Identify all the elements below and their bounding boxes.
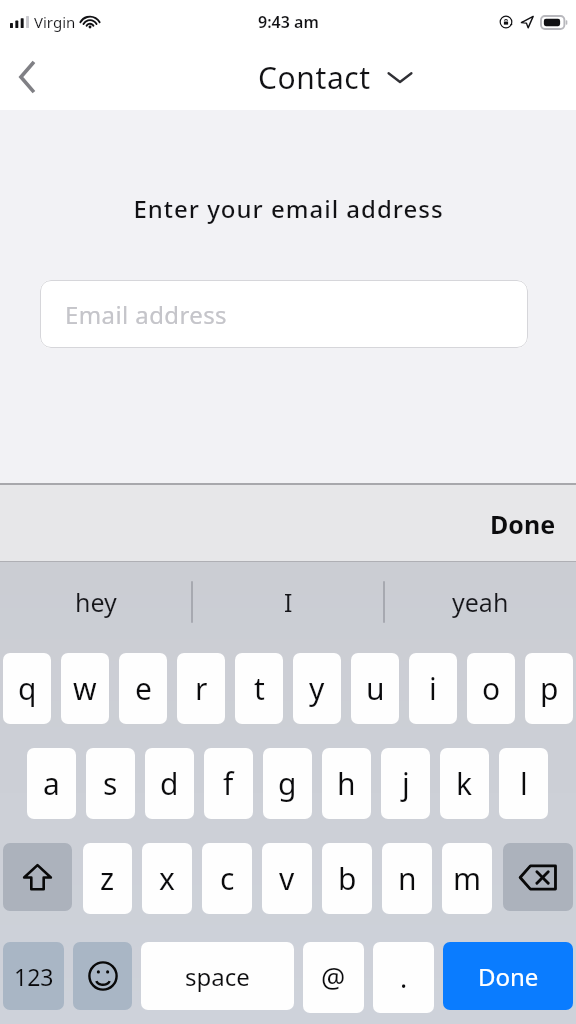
button[interactable]: d bbox=[145, 748, 194, 819]
button[interactable]: q bbox=[3, 653, 51, 724]
staticText: @ bbox=[321, 959, 346, 996]
button[interactable]: o bbox=[467, 653, 515, 724]
button[interactable]: n bbox=[382, 843, 432, 914]
button[interactable]: x bbox=[142, 843, 192, 914]
button[interactable]: a bbox=[27, 748, 76, 819]
button[interactable]: t bbox=[235, 653, 283, 724]
staticText: I bbox=[284, 585, 293, 619]
button[interactable]: Backspace bbox=[503, 843, 573, 911]
button[interactable]: m bbox=[442, 843, 492, 914]
staticText: h bbox=[337, 763, 356, 804]
button[interactable]: l bbox=[499, 748, 548, 819]
button[interactable]: i bbox=[409, 653, 457, 724]
staticText: 123 bbox=[14, 961, 54, 992]
staticText: q bbox=[18, 668, 37, 709]
staticText: x bbox=[159, 858, 175, 899]
staticText: v bbox=[279, 858, 295, 899]
button[interactable]: w bbox=[61, 653, 109, 724]
button[interactable]: I bbox=[192, 562, 384, 642]
button[interactable]: h bbox=[322, 748, 371, 819]
staticText: r bbox=[195, 668, 208, 709]
staticText: d bbox=[160, 763, 179, 804]
staticText: f bbox=[223, 763, 234, 804]
staticText: z bbox=[100, 858, 115, 899]
staticText: e bbox=[135, 668, 152, 709]
button[interactable]: @ bbox=[303, 942, 364, 1013]
staticText: t bbox=[254, 668, 265, 709]
staticText: yeah bbox=[452, 585, 509, 619]
button[interactable]: Done bbox=[443, 942, 573, 1010]
button[interactable]: Done bbox=[470, 485, 576, 562]
button[interactable]: j bbox=[381, 748, 430, 819]
staticText: o bbox=[482, 668, 501, 709]
staticText: g bbox=[278, 763, 297, 804]
button[interactable]: Emoji bbox=[73, 942, 132, 1010]
staticText: p bbox=[540, 668, 559, 709]
button[interactable]: Email address bbox=[40, 280, 528, 348]
staticText: Contact bbox=[258, 57, 371, 98]
button[interactable]: k bbox=[440, 748, 489, 819]
button[interactable]: e bbox=[119, 653, 167, 724]
staticText: w bbox=[73, 668, 97, 709]
staticText: . bbox=[400, 959, 408, 996]
button[interactable]: g bbox=[263, 748, 312, 819]
staticText: y bbox=[309, 668, 325, 709]
button[interactable]: f bbox=[204, 748, 253, 819]
button[interactable]: Shift bbox=[3, 843, 72, 911]
staticText: Enter your email address bbox=[133, 192, 444, 225]
staticText: n bbox=[398, 858, 417, 899]
button[interactable]: u bbox=[351, 653, 399, 724]
staticText: Done bbox=[478, 960, 539, 993]
button[interactable]: space bbox=[141, 942, 294, 1010]
staticText: m bbox=[453, 858, 482, 899]
staticText: Done bbox=[490, 507, 556, 541]
button[interactable]: p bbox=[525, 653, 573, 724]
staticText: Email address bbox=[65, 298, 228, 331]
button[interactable]: v bbox=[262, 843, 312, 914]
button[interactable]: hey bbox=[0, 562, 192, 642]
button[interactable]: . bbox=[373, 942, 434, 1013]
staticText: a bbox=[43, 763, 60, 804]
button[interactable]: r bbox=[177, 653, 225, 724]
button[interactable]: z bbox=[83, 843, 132, 914]
button[interactable]: Back bbox=[0, 50, 54, 104]
button[interactable]: 123 bbox=[3, 942, 64, 1010]
button[interactable]: yeah bbox=[384, 562, 576, 642]
staticText: l bbox=[520, 763, 528, 804]
staticText: s bbox=[103, 763, 118, 804]
staticText: j bbox=[402, 763, 410, 804]
staticText: Virgin bbox=[34, 12, 76, 32]
staticText: i bbox=[429, 668, 437, 709]
staticText: k bbox=[456, 763, 473, 804]
staticText: b bbox=[338, 858, 357, 899]
button[interactable]: Contact bbox=[258, 57, 413, 98]
staticText: u bbox=[366, 668, 385, 709]
button[interactable]: y bbox=[293, 653, 341, 724]
button[interactable]: s bbox=[86, 748, 135, 819]
staticText: space bbox=[185, 960, 250, 993]
staticText: c bbox=[220, 858, 235, 899]
button[interactable]: b bbox=[322, 843, 372, 914]
button[interactable]: c bbox=[202, 843, 252, 914]
staticText: 9:43 am bbox=[258, 11, 319, 33]
staticText: hey bbox=[75, 585, 117, 619]
